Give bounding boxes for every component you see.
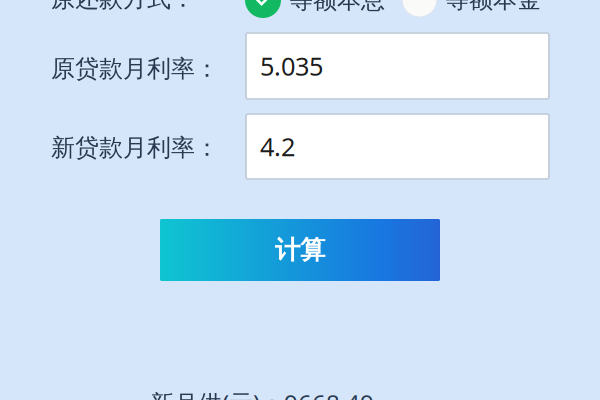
- button[interactable]: 等额本金: [402, 0, 541, 17]
- staticText: 4.2: [260, 130, 295, 163]
- button[interactable]: 等额本息: [245, 0, 385, 18]
- staticText: 原贷款月利率：: [51, 54, 219, 83]
- button[interactable]: 计算: [160, 219, 440, 281]
- staticText: 5.035: [260, 49, 323, 83]
- staticText: 新月供(元)：9668.49: [150, 387, 374, 400]
- staticText: 原还款方式：: [51, 0, 195, 13]
- staticText: 等额本息: [289, 0, 385, 15]
- staticText: 等额本金: [445, 0, 541, 14]
- staticText: 计算: [275, 234, 325, 265]
- staticText: 新贷款月利率：: [51, 133, 219, 162]
